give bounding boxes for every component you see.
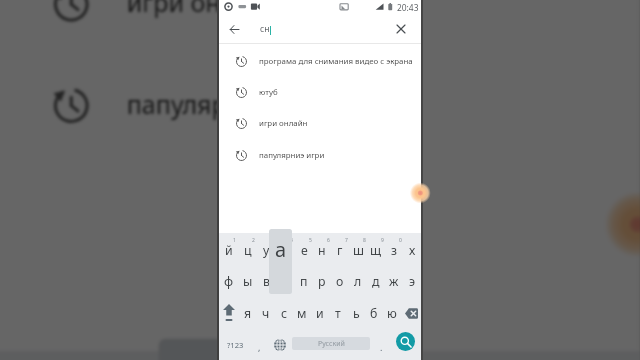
- button[interactable]: е: [241, 351, 298, 360]
- button[interactable]: и: [311, 297, 329, 329]
- button[interactable]: м: [293, 297, 311, 329]
- staticText: 4: [290, 237, 293, 244]
- button[interactable]: х: [403, 233, 421, 265]
- staticText: д: [372, 273, 380, 290]
- button[interactable]: э: [403, 265, 421, 297]
- button[interactable]: Русский: [292, 337, 370, 350]
- staticText: ь: [353, 305, 360, 322]
- button[interactable]: ю: [383, 297, 401, 329]
- button[interactable]: ,: [252, 329, 266, 360]
- button[interactable]: програма для снимания видео с экрана: [219, 46, 421, 77]
- button[interactable]: н: [313, 233, 331, 265]
- button[interactable]: ц: [238, 233, 257, 265]
- staticText: ч: [262, 305, 270, 322]
- staticText: 20:43: [397, 2, 419, 13]
- button[interactable]: ж: [385, 265, 403, 297]
- staticText: 5: [309, 237, 312, 244]
- staticText: р: [318, 273, 326, 290]
- staticText: 7: [345, 237, 348, 244]
- button[interactable]: у: [120, 351, 181, 360]
- button[interactable]: игри онлайн: [0, 0, 640, 53]
- button[interactable]: п: [295, 265, 313, 297]
- button[interactable]: у: [257, 233, 276, 265]
- staticText: п: [300, 273, 308, 290]
- staticText: к: [282, 242, 289, 259]
- button[interactable]: Back: [222, 17, 246, 41]
- button[interactable]: Search: [396, 332, 415, 351]
- staticText: 6: [327, 237, 330, 244]
- button[interactable]: б: [365, 297, 383, 329]
- button[interactable]: с: [275, 297, 293, 329]
- button[interactable]: о: [331, 265, 349, 297]
- button[interactable]: ш: [412, 351, 469, 360]
- staticText: програма для снимания видео с экрана: [259, 56, 413, 67]
- staticText: а: [275, 236, 287, 263]
- button[interactable]: игри онлайн: [219, 108, 421, 139]
- staticText: 9: [381, 237, 384, 244]
- button[interactable]: Shift: [219, 297, 239, 329]
- staticText: у: [263, 242, 270, 259]
- staticText: папулярниэ игри: [127, 88, 336, 123]
- button[interactable]: й: [219, 233, 238, 265]
- staticText: игри онлайн: [127, 0, 282, 22]
- button[interactable]: ш: [349, 233, 367, 265]
- staticText: я: [244, 305, 252, 322]
- staticText: л: [354, 273, 362, 290]
- staticText: ю: [387, 305, 397, 322]
- button[interactable]: .: [374, 329, 388, 360]
- staticText: ютуб: [259, 87, 278, 98]
- staticText: м: [297, 305, 307, 322]
- button[interactable]: г: [331, 233, 349, 265]
- button[interactable]: л: [349, 265, 367, 297]
- button[interactable]: я: [239, 297, 257, 329]
- staticText: 8: [363, 237, 366, 244]
- button[interactable]: Change language: [269, 329, 291, 360]
- staticText: ж: [389, 273, 399, 290]
- staticText: е: [301, 242, 308, 259]
- button[interactable]: ?123: [223, 329, 248, 360]
- staticText: ц: [244, 242, 252, 259]
- staticText: й: [225, 242, 233, 259]
- button[interactable]: папулярниэ игри: [0, 56, 640, 155]
- button[interactable]: Clear search: [389, 17, 413, 41]
- staticText: щ: [370, 242, 382, 259]
- button[interactable]: з: [385, 233, 403, 265]
- button[interactable]: ь: [347, 297, 365, 329]
- button[interactable]: р: [313, 265, 331, 297]
- staticText: о: [336, 273, 344, 290]
- staticText: т: [335, 305, 341, 322]
- button[interactable]: ч: [257, 297, 275, 329]
- staticText: .: [380, 341, 383, 353]
- staticText: игри онлайн: [259, 118, 308, 129]
- button[interactable]: в: [257, 265, 276, 297]
- staticText: н: [318, 242, 326, 259]
- staticText: 1: [233, 237, 236, 244]
- button[interactable]: д: [367, 265, 385, 297]
- staticText: 2: [252, 237, 255, 244]
- button[interactable]: папулярниэ игри: [219, 140, 421, 171]
- button[interactable]: т: [329, 297, 347, 329]
- button[interactable]: ы: [238, 265, 257, 297]
- staticText: з: [391, 242, 398, 259]
- staticText: г: [337, 242, 343, 259]
- button[interactable]: щ: [367, 233, 385, 265]
- button[interactable]: к: [181, 351, 241, 360]
- staticText: папулярниэ игри: [259, 150, 325, 161]
- button[interactable]: е: [295, 233, 313, 265]
- button[interactable]: ютуб: [219, 77, 421, 108]
- button[interactable]: а: [276, 265, 295, 297]
- staticText: 0: [399, 237, 402, 244]
- button[interactable]: к: [276, 233, 295, 265]
- button[interactable]: Backspace: [401, 297, 421, 329]
- staticText: э: [409, 273, 416, 290]
- button[interactable]: ф: [219, 265, 238, 297]
- staticText: ы: [243, 273, 253, 290]
